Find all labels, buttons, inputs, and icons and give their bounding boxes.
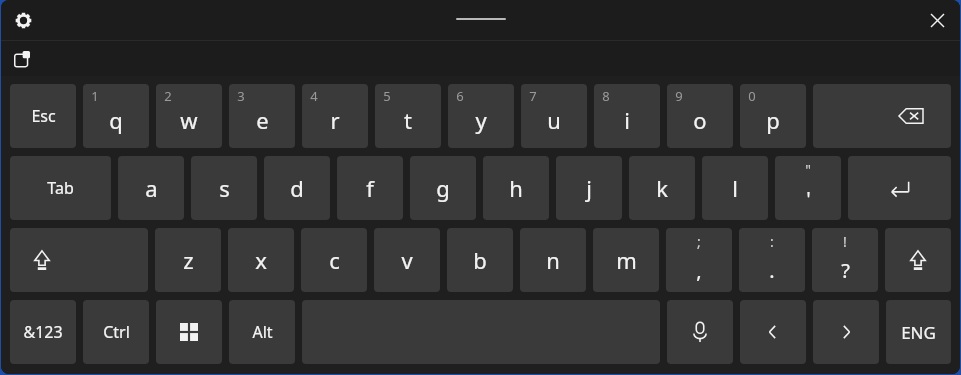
staticText: q — [109, 105, 123, 135]
button[interactable]: Close — [920, 3, 954, 37]
staticText: 2 — [164, 87, 172, 105]
staticText: 1 — [91, 87, 99, 105]
button[interactable]: m — [593, 228, 659, 292]
staticText: o — [693, 105, 707, 135]
button[interactable]: Previous — [740, 300, 806, 364]
button[interactable]: Next — [813, 300, 879, 364]
staticText: m — [616, 245, 637, 275]
staticText: ; — [697, 232, 701, 251]
staticText: Alt — [252, 321, 273, 343]
button[interactable]: 0 — [740, 84, 806, 148]
staticText: d — [290, 173, 304, 203]
button[interactable]: " — [775, 156, 841, 220]
button[interactable]: &123 — [10, 300, 76, 364]
staticText: u — [547, 105, 561, 135]
button[interactable]: f — [337, 156, 403, 220]
staticText: Tab — [47, 177, 74, 199]
staticText: ? — [841, 257, 850, 284]
button[interactable]: Enter — [848, 156, 951, 220]
button[interactable]: Move keyboard — [446, 8, 516, 30]
staticText: 5 — [383, 87, 391, 105]
button[interactable]: Voice typing — [667, 300, 733, 364]
button[interactable]: x — [228, 228, 294, 292]
staticText: c — [329, 245, 340, 275]
button[interactable]: 3 — [229, 84, 295, 148]
staticText: k — [656, 173, 668, 203]
button[interactable]: 1 — [83, 84, 149, 148]
button[interactable]: l — [702, 156, 768, 220]
staticText: s — [219, 173, 230, 203]
staticText: p — [766, 105, 780, 135]
button[interactable]: c — [301, 228, 367, 292]
staticText: j — [586, 173, 592, 203]
button[interactable]: h — [483, 156, 549, 220]
staticText: h — [509, 173, 523, 203]
button[interactable]: : — [739, 228, 805, 292]
button[interactable]: 7 — [521, 84, 587, 148]
staticText: " — [805, 160, 811, 179]
button[interactable]: k — [629, 156, 695, 220]
button[interactable]: n — [520, 228, 586, 292]
button[interactable]: Backspace — [813, 84, 951, 148]
button[interactable]: Esc — [10, 84, 76, 148]
staticText: ! — [843, 232, 847, 251]
staticText: n — [546, 245, 560, 275]
button[interactable]: s — [191, 156, 257, 220]
staticText: : — [770, 232, 774, 251]
button[interactable]: Ctrl — [83, 300, 149, 364]
staticText: w — [180, 105, 198, 135]
staticText: 7 — [529, 87, 537, 105]
button[interactable]: 6 — [448, 84, 514, 148]
button[interactable]: Emoji and clipboard — [7, 44, 37, 74]
button[interactable]: z — [155, 228, 221, 292]
staticText: g — [436, 173, 450, 203]
staticText: e — [256, 105, 269, 135]
button[interactable]: a — [118, 156, 184, 220]
staticText: ENG — [901, 321, 936, 344]
staticText: 9 — [675, 87, 683, 105]
staticText: 0 — [748, 87, 756, 105]
button[interactable]: Shift — [885, 228, 951, 292]
staticText: 4 — [310, 87, 318, 105]
button[interactable]: 8 — [594, 84, 660, 148]
button[interactable]: Settings — [7, 4, 39, 36]
button[interactable]: 5 — [375, 84, 441, 148]
staticText: 6 — [456, 87, 464, 105]
staticText: f — [366, 173, 374, 203]
button[interactable]: d — [264, 156, 330, 220]
staticText: &123 — [23, 321, 63, 343]
button[interactable]: 4 — [302, 84, 368, 148]
button[interactable]: Tab — [10, 156, 111, 220]
button[interactable]: v — [374, 228, 440, 292]
staticText: 3 — [237, 87, 245, 105]
staticText: . — [769, 257, 775, 284]
button[interactable]: 2 — [156, 84, 222, 148]
staticText: a — [145, 173, 158, 203]
staticText: i — [624, 105, 630, 135]
button[interactable]: b — [447, 228, 513, 292]
button[interactable]: j — [556, 156, 622, 220]
staticText: b — [473, 245, 487, 275]
staticText: x — [255, 245, 267, 275]
staticText: Esc — [31, 105, 56, 127]
staticText: y — [475, 105, 487, 135]
button[interactable]: g — [410, 156, 476, 220]
button[interactable]: ENG — [886, 300, 951, 364]
button[interactable]: 9 — [667, 84, 733, 148]
staticText: l — [732, 173, 738, 203]
staticText: r — [330, 105, 340, 135]
button[interactable]: Shift — [10, 228, 148, 292]
staticText: 8 — [602, 87, 610, 105]
button[interactable]: ! — [812, 228, 878, 292]
button[interactable]: Alt — [229, 300, 295, 364]
button[interactable]: ; — [666, 228, 732, 292]
staticText: t — [404, 105, 412, 135]
staticText: ' — [806, 185, 811, 212]
staticText: v — [401, 245, 413, 275]
staticText: z — [183, 245, 194, 275]
staticText: Ctrl — [103, 321, 130, 343]
staticText: , — [696, 257, 702, 284]
button[interactable]: Windows — [156, 300, 222, 364]
